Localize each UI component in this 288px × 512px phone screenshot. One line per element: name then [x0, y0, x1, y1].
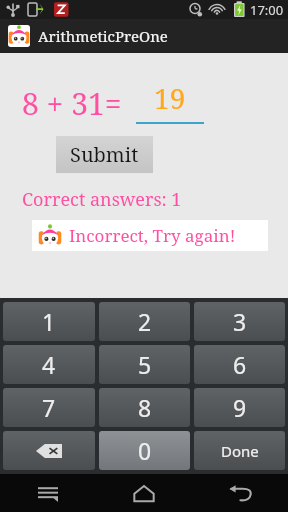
button[interactable]: Back [192, 474, 288, 512]
staticText: 1 [42, 306, 56, 337]
staticText: 3 [233, 306, 247, 337]
staticText: 2 [138, 306, 152, 337]
button[interactable]: 1 [3, 302, 95, 341]
staticText: 7 [42, 392, 56, 423]
staticText: Correct answers: 1 [22, 187, 182, 212]
staticText: 6 [233, 349, 247, 380]
button[interactable]: 2 [99, 302, 190, 341]
button[interactable]: Done [194, 431, 285, 470]
button[interactable]: 3 [194, 302, 285, 341]
staticText: 8 [138, 392, 152, 423]
button[interactable]: 4 [3, 345, 95, 384]
button[interactable]: Submit [56, 136, 153, 173]
button[interactable]: 0 [99, 431, 190, 470]
staticText: Done [221, 441, 259, 461]
staticText: Submit [70, 141, 139, 168]
staticText: 19 [154, 79, 186, 117]
staticText: 0 [138, 435, 152, 466]
button[interactable]: 8 [99, 388, 190, 427]
button[interactable]: 5 [99, 345, 190, 384]
button[interactable]: Home [96, 474, 192, 512]
button[interactable]: 6 [194, 345, 285, 384]
staticText: 8 + 31= [22, 83, 122, 124]
staticText: 4 [42, 349, 56, 380]
staticText: ArithmeticPreOne [38, 26, 168, 46]
staticText: 5 [138, 349, 152, 380]
button[interactable]: 9 [194, 388, 285, 427]
button[interactable]: Menu [0, 474, 96, 512]
staticText: 17:00 [250, 1, 284, 19]
staticText: 9 [233, 392, 247, 423]
button[interactable]: Backspace [3, 431, 95, 470]
staticText: Incorrect, Try again! [69, 224, 236, 247]
button[interactable]: 7 [3, 388, 95, 427]
